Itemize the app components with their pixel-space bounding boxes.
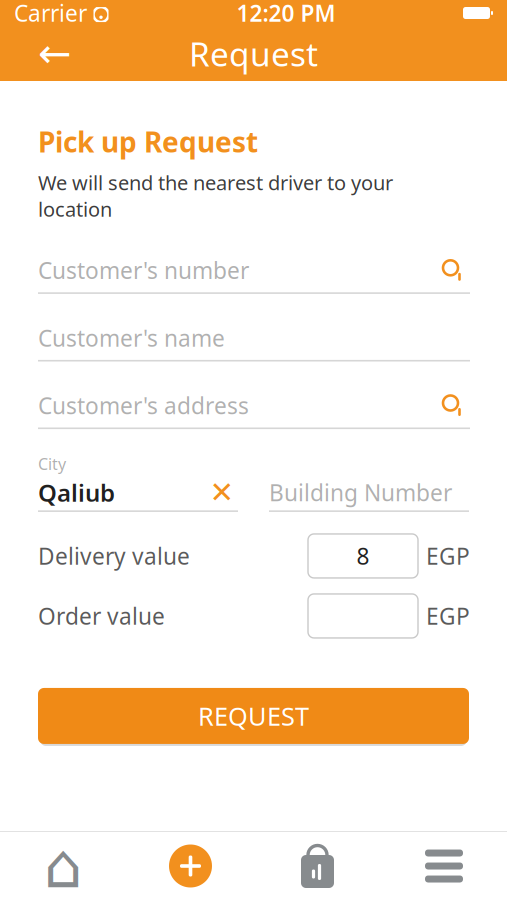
staticText: Pick up Request	[38, 123, 258, 160]
staticText: 12:20 PM	[236, 0, 335, 28]
button[interactable]: Add request	[127, 832, 254, 900]
staticText: Request	[189, 31, 318, 76]
staticText: We will send the nearest driver to your …	[38, 169, 393, 222]
staticText: ←	[38, 31, 72, 76]
staticText: Customer's number	[38, 255, 249, 285]
button[interactable]	[308, 594, 418, 638]
staticText: Delivery value	[38, 541, 190, 571]
button[interactable]: Menu	[381, 832, 507, 900]
staticText: EGP	[426, 601, 470, 631]
button[interactable]: Home	[0, 832, 127, 900]
staticText: Building Number	[269, 477, 452, 507]
staticText: 8	[356, 541, 369, 571]
button[interactable]: Orders	[254, 832, 381, 900]
staticText: REQUEST	[198, 699, 309, 733]
staticText: Order value	[38, 601, 165, 631]
staticText: Customer's address	[38, 390, 249, 421]
button[interactable]: Clear city	[206, 477, 238, 507]
button[interactable]: REQUEST	[38, 686, 469, 746]
staticText: Customer's name	[38, 323, 225, 353]
button[interactable]: Search	[436, 255, 470, 285]
staticText: Qaliub	[38, 476, 115, 508]
staticText: ✕	[209, 476, 234, 509]
staticText: ⌂	[44, 831, 83, 900]
button[interactable]: Search	[436, 390, 470, 420]
staticText: Carrier	[14, 0, 87, 28]
button[interactable]: Back	[28, 26, 82, 80]
button[interactable]: 8	[308, 534, 418, 578]
staticText: EGP	[426, 541, 470, 571]
staticText: City	[38, 453, 66, 474]
